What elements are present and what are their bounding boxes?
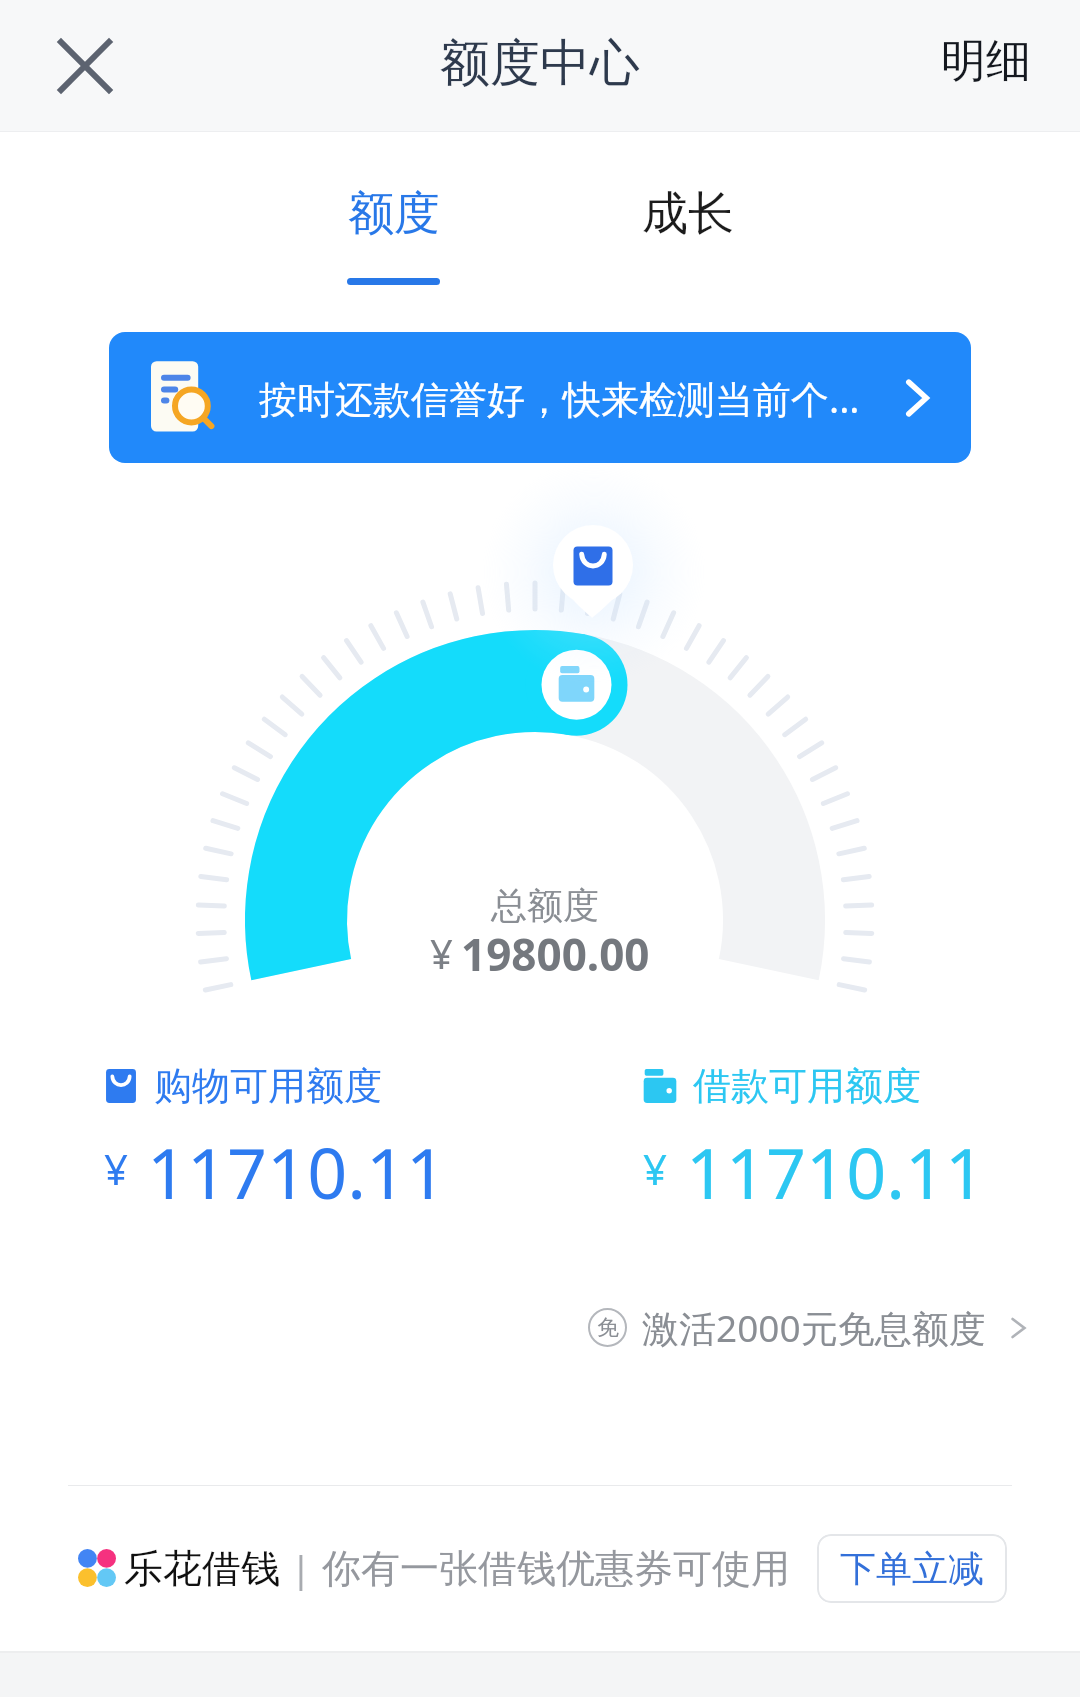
staticText: 下单立减 <box>840 1546 984 1591</box>
staticText: 借款可用额度 <box>693 1062 921 1110</box>
staticText: 19800.00 <box>461 924 650 984</box>
button[interactable]: 下单立减 <box>817 1534 1007 1603</box>
staticText: 购物可用额度 <box>154 1062 382 1110</box>
button[interactable]: 成长 <box>607 160 768 300</box>
button[interactable]: 额度 <box>313 160 474 300</box>
staticText: ¥ <box>104 1140 129 1197</box>
staticText: 11710.11 <box>686 1124 986 1219</box>
button[interactable]: 免 <box>580 1290 1042 1365</box>
staticText: 免 <box>597 1314 619 1342</box>
staticText: ¥ <box>430 926 453 980</box>
staticText: 明细 <box>941 33 1031 90</box>
staticText: 额度 <box>348 185 440 243</box>
staticText: 总额度 <box>491 883 599 928</box>
other: More <box>906 380 929 416</box>
staticText: 按时还款信誉好，快来检测当前个... <box>259 372 860 424</box>
staticText: 额度中心 <box>440 32 640 95</box>
staticText: ¥ <box>643 1140 668 1197</box>
button[interactable]: 按时还款信誉好，快来检测当前个... <box>109 332 971 463</box>
staticText: 乐花借钱 <box>124 1544 280 1593</box>
staticText: 11710.11 <box>147 1124 447 1219</box>
staticText: 激活2000元免息额度 <box>642 1302 986 1353</box>
staticText: 成长 <box>642 185 734 243</box>
staticText: | <box>291 1544 311 1593</box>
button[interactable]: Close <box>35 16 135 116</box>
button[interactable]: 明细 <box>897 13 1080 118</box>
staticText: 你有一张借钱优惠券可使用 <box>322 1544 790 1593</box>
